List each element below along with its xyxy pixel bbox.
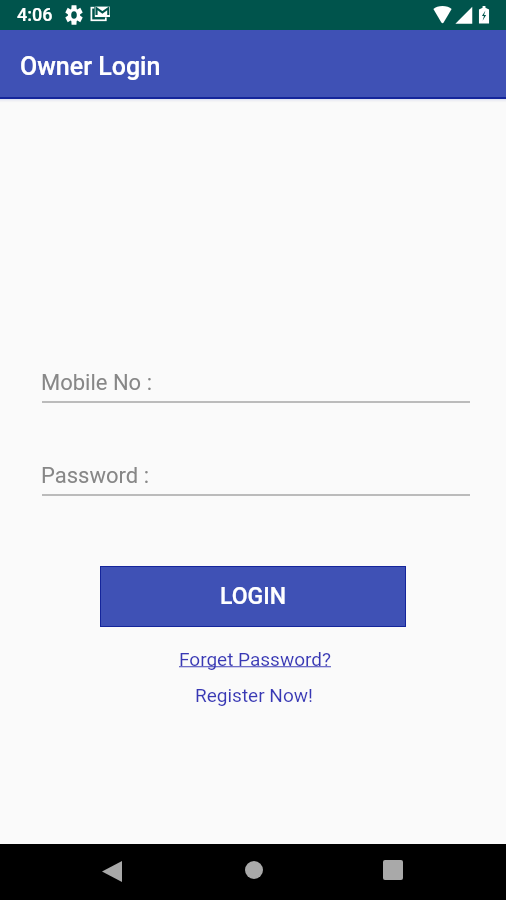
button[interactable]: LOGIN <box>101 567 405 626</box>
staticText: Owner Login <box>20 52 161 81</box>
button[interactable]: Back <box>92 851 132 891</box>
staticText: 4:06 <box>17 4 53 25</box>
button[interactable]: Forget Password? <box>173 642 337 676</box>
button[interactable]: Recent apps <box>373 850 413 890</box>
staticText: Password : <box>41 463 149 489</box>
staticText: Register Now! <box>195 684 313 706</box>
button[interactable]: Password : <box>42 451 470 496</box>
button[interactable]: Register Now! <box>189 678 319 712</box>
staticText: Mobile No : <box>41 370 152 396</box>
button[interactable]: Home <box>234 850 274 890</box>
staticText: LOGIN <box>220 583 287 610</box>
button[interactable]: Mobile No : <box>42 358 470 403</box>
staticText: Forget Password? <box>179 648 331 670</box>
